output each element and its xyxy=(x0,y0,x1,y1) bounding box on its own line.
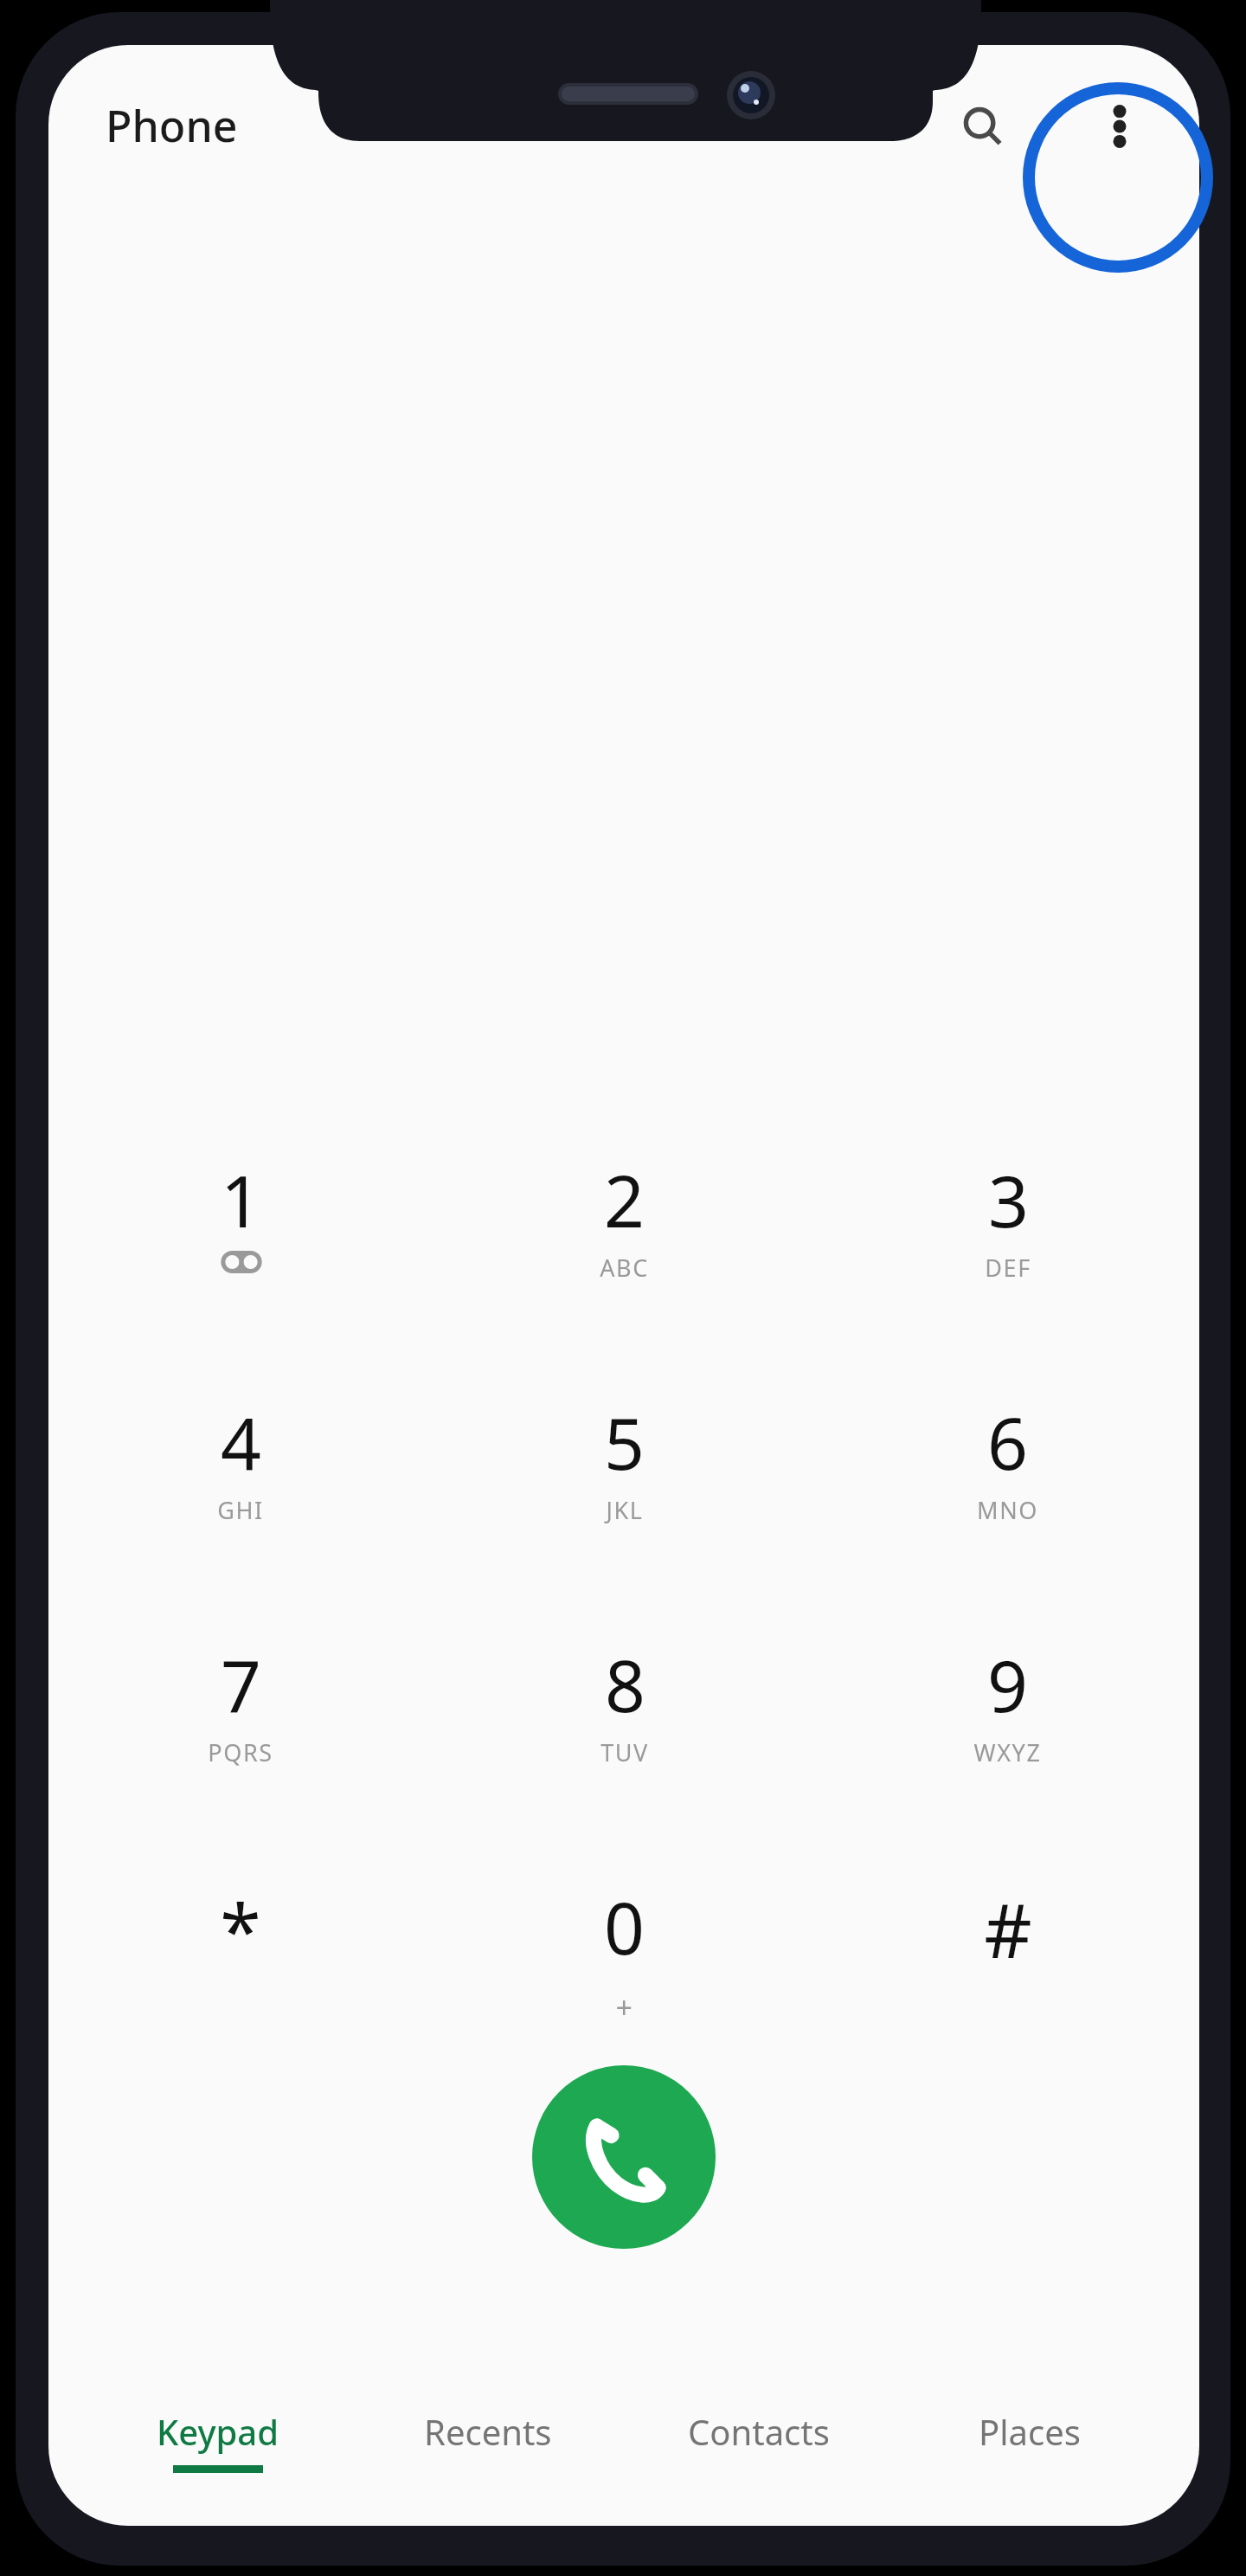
staticText: Phone xyxy=(106,96,238,155)
button[interactable]: 3 xyxy=(816,1144,1199,1376)
staticText: MNO xyxy=(977,1494,1038,1526)
staticText: JKL xyxy=(606,1494,644,1526)
staticText: WXYZ xyxy=(973,1736,1042,1768)
button[interactable]: 5 xyxy=(433,1387,816,1619)
button[interactable]: Keypad xyxy=(83,2396,353,2526)
staticText: 2 xyxy=(604,1151,645,1248)
button[interactable]: Search xyxy=(940,83,1026,170)
button[interactable]: 6 xyxy=(816,1387,1199,1619)
button[interactable]: More options xyxy=(1075,81,1165,171)
staticText: 0 xyxy=(604,1878,645,1975)
staticText: 9 xyxy=(987,1636,1028,1733)
button[interactable]: Places xyxy=(894,2396,1165,2526)
button[interactable]: 4 xyxy=(48,1387,433,1619)
button[interactable]: Recents xyxy=(353,2396,623,2526)
staticText: 7 xyxy=(221,1636,261,1733)
button[interactable]: 8 xyxy=(433,1629,816,1861)
staticText: Keypad xyxy=(157,2408,279,2455)
staticText: 5 xyxy=(604,1394,645,1491)
staticText: 4 xyxy=(221,1394,261,1491)
button[interactable]: 2 xyxy=(433,1144,816,1376)
staticText: ABC xyxy=(600,1252,649,1284)
staticText: 6 xyxy=(987,1394,1028,1491)
button[interactable]: * xyxy=(48,1871,433,2103)
staticText: GHI xyxy=(217,1494,264,1526)
button[interactable]: 9 xyxy=(816,1629,1199,1861)
staticText: 3 xyxy=(988,1151,1029,1248)
button[interactable]: 0 xyxy=(433,1871,816,2103)
staticText: 8 xyxy=(605,1636,645,1733)
staticText: Recents xyxy=(424,2408,552,2455)
staticText: + xyxy=(615,1987,634,2027)
button[interactable]: # xyxy=(816,1871,1199,2103)
staticText: * xyxy=(220,1878,261,1980)
button[interactable]: Call xyxy=(532,2065,716,2249)
button[interactable]: 1 xyxy=(48,1144,433,1376)
button[interactable]: 7 xyxy=(48,1629,433,1861)
staticText: TUV xyxy=(601,1736,649,1768)
staticText: Places xyxy=(979,2408,1081,2455)
button[interactable]: Contacts xyxy=(623,2396,894,2526)
staticText: # xyxy=(984,1878,1032,1980)
staticText: DEF xyxy=(985,1252,1031,1284)
staticText: 1 xyxy=(221,1151,261,1248)
staticText: PQRS xyxy=(208,1736,273,1768)
staticText: Contacts xyxy=(688,2408,830,2455)
